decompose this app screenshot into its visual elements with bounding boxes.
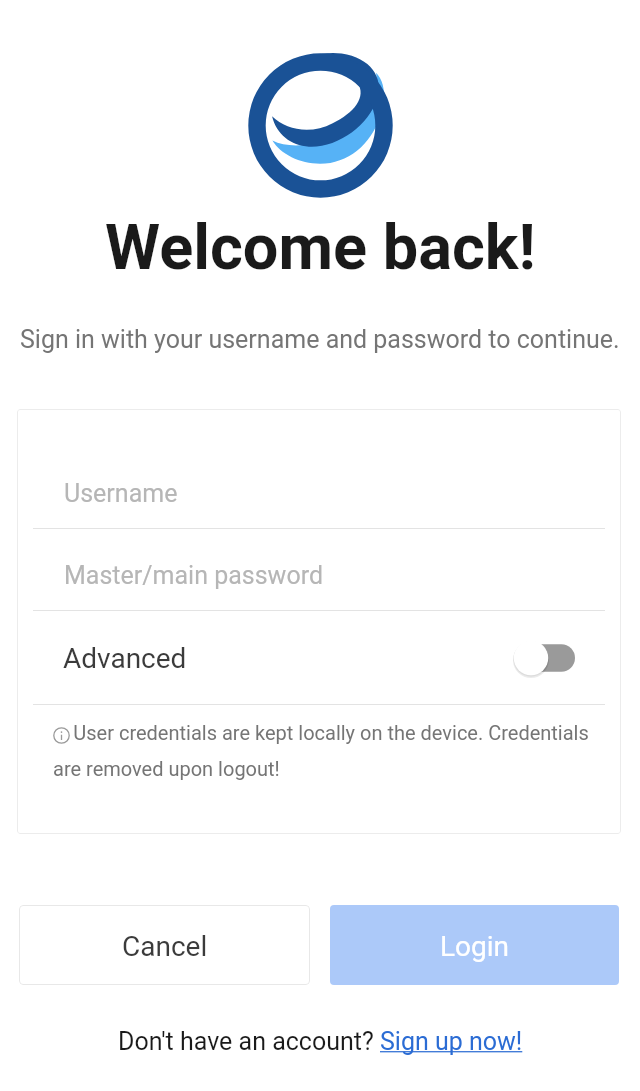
staticText: User credentials are kept locally on the… (53, 721, 609, 780)
button[interactable]: Cancel (19, 905, 310, 985)
staticText: Username (64, 479, 178, 508)
staticText: Master/main password (64, 561, 323, 590)
staticText: Welcome back! (105, 211, 536, 285)
staticText: Cancel (122, 930, 208, 963)
button[interactable]: Sign up now! (380, 1027, 523, 1056)
other: App logo (248, 53, 393, 198)
staticText: Don't have an account? (118, 1027, 380, 1056)
button[interactable]: Advanced toggle (513, 640, 575, 676)
button[interactable]: Login (330, 905, 619, 985)
button[interactable]: Username (17, 409, 621, 529)
staticText: Login (440, 930, 510, 963)
button[interactable]: Advanced (17, 611, 621, 705)
button[interactable]: Master/main password (17, 529, 621, 611)
staticText: Sign in with your username and password … (20, 325, 620, 354)
staticText: Advanced (63, 642, 187, 675)
